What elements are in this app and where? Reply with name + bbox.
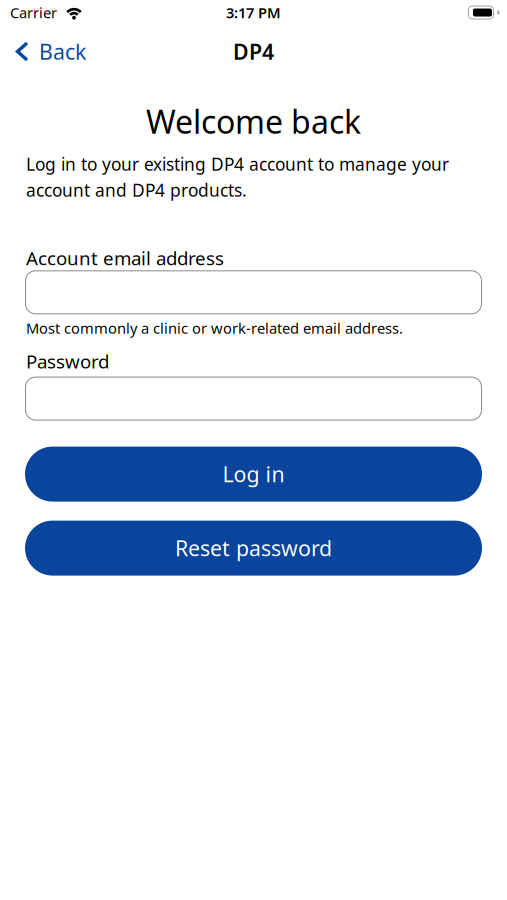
staticText: Welcome back <box>146 100 361 142</box>
button[interactable]: Back <box>0 37 86 66</box>
staticText: Password <box>26 349 109 374</box>
staticText: Reset password <box>175 534 332 562</box>
staticText: Back <box>39 37 86 66</box>
staticText: 3:17 PM <box>226 3 281 22</box>
staticText: DP4 <box>233 37 274 66</box>
button[interactable]: Log in <box>25 447 482 502</box>
staticText: Log in <box>222 460 284 488</box>
staticText: Log in to your existing DP4 account to m… <box>26 152 449 175</box>
button[interactable]: Reset password <box>25 521 482 576</box>
button[interactable] <box>25 270 482 314</box>
staticText: account and DP4 products. <box>26 178 247 201</box>
button[interactable] <box>25 377 482 421</box>
staticText: Carrier <box>10 3 57 22</box>
staticText: Most commonly a clinic or work-related e… <box>26 318 403 338</box>
staticText: Account email address <box>26 245 224 270</box>
